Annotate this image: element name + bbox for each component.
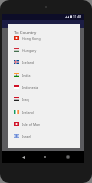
button[interactable]: Back <box>17 151 29 163</box>
staticText: Iraq <box>22 97 29 102</box>
staticText: To Country <box>14 29 37 35</box>
staticText: Isle of Man <box>22 122 41 127</box>
button[interactable]: Home <box>39 151 51 163</box>
staticText: Indonesia <box>22 85 39 90</box>
staticText: Hungary <box>22 48 37 53</box>
staticText: Iceland <box>22 60 35 65</box>
staticText: Israel <box>22 134 32 139</box>
staticText: India <box>22 73 31 78</box>
button[interactable]: Hong Kong <box>8 32 80 44</box>
button[interactable]: Israel <box>8 130 80 142</box>
button[interactable]: Indonesia <box>8 81 80 93</box>
button[interactable]: Isle of Man <box>8 118 80 130</box>
staticText: Ireland <box>22 110 34 115</box>
button[interactable]: India <box>8 69 80 81</box>
staticText: Hong Kong <box>22 36 41 41</box>
button[interactable]: Iceland <box>8 56 80 68</box>
staticText: 11:48 <box>73 15 82 19</box>
button[interactable]: Ireland <box>8 106 80 118</box>
button[interactable]: Hungary <box>8 44 80 56</box>
button[interactable]: Recent apps <box>62 151 74 163</box>
button[interactable]: Iraq <box>8 93 80 105</box>
